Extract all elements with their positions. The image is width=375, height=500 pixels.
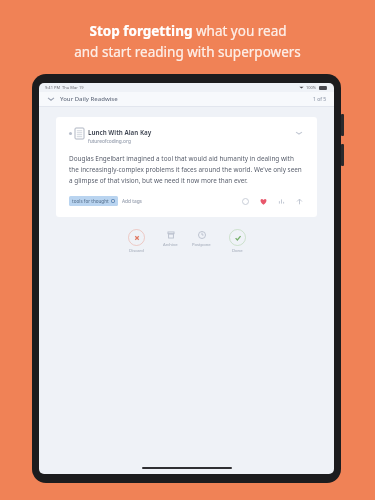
button[interactable]: Done <box>227 227 248 256</box>
button[interactable]: Lunch With Alan Kay <box>56 117 317 217</box>
button[interactable]: Share <box>295 197 304 206</box>
staticText: tools for thought <box>72 198 109 204</box>
button[interactable]: Highlights <box>277 197 286 206</box>
button[interactable]: Favorite <box>259 197 268 206</box>
staticText: Douglas Engelbart imagined a tool that w… <box>69 154 304 185</box>
staticText: 9:41 PM Thu Mar 19 <box>45 85 84 90</box>
button[interactable]: Archive <box>161 227 180 250</box>
staticText: Stop forgetting what you read <box>89 22 287 40</box>
button[interactable]: Collapse <box>46 94 56 104</box>
button[interactable]: Discard <box>126 227 147 256</box>
staticText: 1 of 5 <box>313 96 327 103</box>
button[interactable]: Comment <box>241 197 250 206</box>
staticText: Lunch With Alan Kay <box>88 128 152 136</box>
staticText: Discard <box>129 248 144 254</box>
staticText: Postpone <box>192 242 211 248</box>
button[interactable]: tools for thought <box>69 196 118 206</box>
button[interactable]: Postpone <box>190 227 213 250</box>
staticText: 100% <box>306 85 317 90</box>
staticText: Add tags <box>122 198 142 205</box>
staticText: futureofcoding.org <box>88 138 131 145</box>
staticText: Done <box>232 248 243 254</box>
button[interactable]: More options <box>294 128 304 138</box>
staticText: and start reading with superpowers <box>74 43 301 61</box>
staticText: Your Daily Readwise <box>60 95 118 103</box>
staticText: Archive <box>163 242 178 248</box>
